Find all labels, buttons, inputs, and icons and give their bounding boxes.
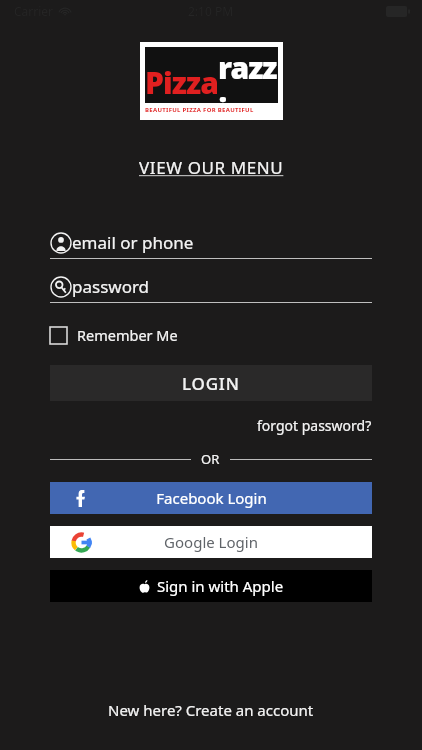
button[interactable]: Facebook [50, 482, 372, 514]
button[interactable]: Google [50, 526, 372, 558]
button[interactable]: Pizza [140, 42, 283, 120]
staticText: Facebook Login [156, 488, 267, 508]
staticText: BEAUTIFUL PIZZA FOR BEAUTIFUL PEOPLE [145, 106, 278, 114]
other: Apple [138, 580, 151, 593]
staticText: Sign in with Apple [157, 576, 284, 596]
button[interactable]: VIEW OUR MENU [131, 152, 292, 183]
other: Facebook [72, 488, 92, 508]
button[interactable]: Password [50, 275, 372, 303]
staticText: forgot password? [257, 416, 372, 435]
other: Password [50, 276, 72, 298]
staticText: razzi [218, 47, 278, 103]
button[interactable]: Remember Me [50, 321, 178, 349]
staticText: OR [201, 450, 220, 468]
button[interactable]: forgot password? [257, 413, 372, 438]
staticText: VIEW OUR MENU [139, 156, 284, 179]
button[interactable]: Account [50, 231, 372, 259]
staticText: New here? Create an account [108, 700, 314, 720]
button[interactable]: New here? Create an account [102, 694, 320, 726]
staticText: password [72, 275, 150, 298]
other: Account [50, 232, 72, 254]
staticText: LOGIN [182, 372, 240, 395]
button[interactable]: Apple [50, 570, 372, 602]
staticText: Remember Me [77, 325, 178, 345]
staticText: Google Login [164, 532, 258, 552]
staticText: Pizza [145, 62, 218, 103]
button[interactable]: LOGIN [50, 365, 372, 401]
staticText: email or phone [72, 231, 194, 254]
other: Google [72, 533, 91, 552]
